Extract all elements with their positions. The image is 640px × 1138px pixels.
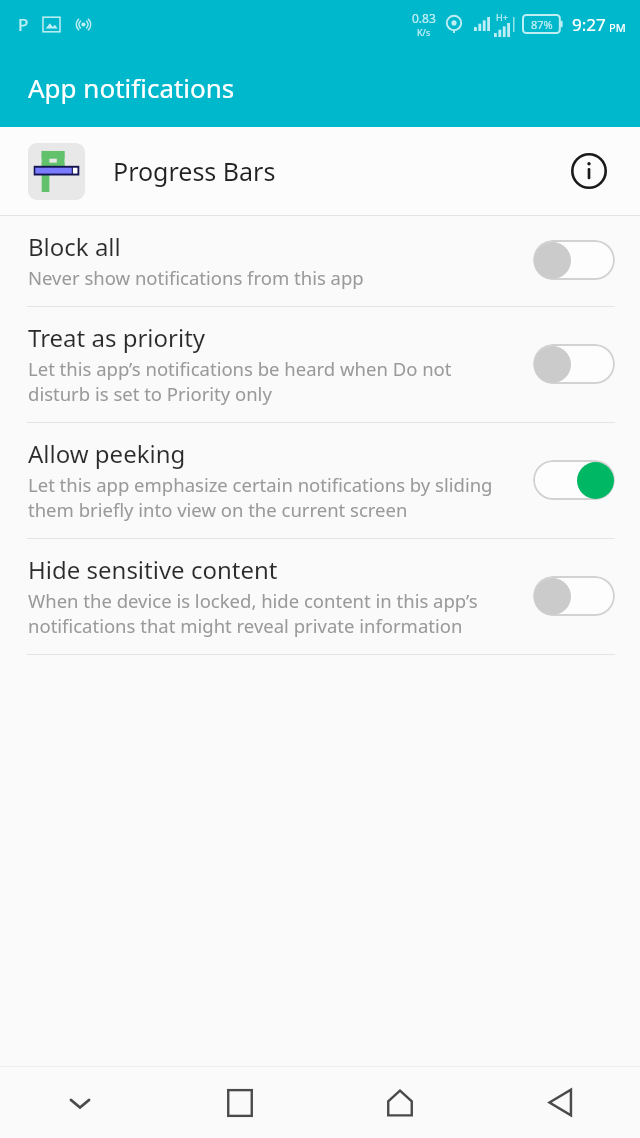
staticText: Treat as priority (28, 321, 206, 354)
staticText: Progress Bars (113, 154, 566, 188)
button[interactable]: Block all (0, 216, 640, 306)
button[interactable]: Hide keyboard (0, 1067, 160, 1138)
button[interactable]: Allow peeking (0, 423, 640, 538)
staticText: Hide sensitive content (28, 553, 278, 586)
button[interactable]: Off (532, 238, 616, 282)
staticText: H+ (496, 11, 508, 23)
button[interactable]: Back (480, 1067, 640, 1138)
staticText: 0.83 (412, 10, 436, 26)
button[interactable]: Home (320, 1067, 480, 1138)
staticText: P (18, 13, 29, 36)
button[interactable]: Progress Bars (0, 127, 640, 215)
staticText: 9:27 (572, 13, 606, 36)
staticText: PM (609, 20, 626, 35)
staticText: When the device is locked, hide content … (28, 588, 514, 638)
button[interactable]: Off (532, 342, 616, 386)
staticText: Let this app’s notifications be heard wh… (28, 356, 514, 406)
staticText: 87% (531, 17, 553, 32)
staticText: K/s (417, 26, 431, 38)
staticText: Let this app emphasize certain notificat… (28, 472, 514, 522)
staticText: Never show notifications from this app (28, 265, 364, 290)
staticText: App notifications (28, 70, 235, 105)
button[interactable]: Hide sensitive content (0, 539, 640, 654)
staticText: Allow peeking (28, 437, 186, 470)
button[interactable]: App info (566, 148, 612, 194)
button[interactable]: Off (532, 574, 616, 618)
button[interactable]: Recent apps (160, 1067, 320, 1138)
button[interactable]: Treat as priority (0, 307, 640, 422)
staticText: Block all (28, 230, 121, 263)
button[interactable]: On (532, 458, 616, 502)
